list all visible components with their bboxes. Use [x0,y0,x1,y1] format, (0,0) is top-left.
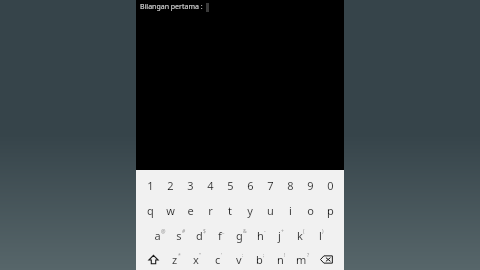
staticText: ' [221,252,223,259]
button[interactable]: t [220,198,240,223]
staticText: c [215,252,221,267]
staticText: s [176,228,182,243]
staticText: n [277,252,284,267]
staticText: 2 [167,178,174,193]
button[interactable]: f [211,223,231,248]
button[interactable]: 3 [180,173,200,198]
button[interactable]: m [292,248,313,270]
button[interactable]: c [208,248,229,270]
staticText: g [236,228,243,243]
staticText: - [264,228,266,235]
staticText: 5 [227,178,234,193]
button[interactable]: 5 [220,173,240,198]
staticText: 9 [307,178,314,193]
staticText: 7 [267,178,274,193]
button[interactable]: y [240,198,260,223]
button[interactable]: 9 [300,173,320,198]
button[interactable]: r [200,198,220,223]
staticText: 1 [147,178,154,193]
staticText: : [242,252,244,259]
staticText: y [247,203,253,218]
staticText: o [307,203,314,218]
button[interactable]: k [291,223,311,248]
staticText: _ [222,228,225,235]
button[interactable]: Shift [140,248,166,270]
button[interactable]: d [191,223,211,248]
staticText: v [236,252,242,267]
button[interactable]: w [160,198,180,223]
staticText: b [256,252,263,267]
staticText: d [196,228,203,243]
staticText: # [182,228,186,235]
staticText: & [243,228,247,235]
button[interactable]: a [149,223,170,248]
button[interactable]: 7 [260,173,280,198]
staticText: x [193,252,199,267]
staticText: h [257,228,264,243]
staticText: " [199,252,202,259]
button[interactable]: v [229,248,250,270]
staticText: + [281,228,284,235]
staticText: $ [203,228,206,235]
staticText: 4 [207,178,214,193]
staticText: u [267,203,274,218]
staticText: @ [161,228,166,235]
button[interactable]: s [170,223,191,248]
staticText: 0 [327,178,334,193]
staticText: t [228,203,232,218]
staticText: e [187,203,194,218]
button[interactable]: q [140,198,160,223]
button[interactable]: 0 [320,173,340,198]
staticText: ! [284,252,286,259]
button[interactable]: Backspace [313,248,340,270]
button[interactable]: 6 [240,173,260,198]
button[interactable]: l [311,223,331,248]
button[interactable]: e [180,198,200,223]
staticText: i [289,203,292,218]
button[interactable]: 1 [140,173,160,198]
button[interactable]: 8 [280,173,300,198]
staticText: j [278,228,281,243]
staticText: w [166,203,175,218]
staticText: k [297,228,303,243]
button[interactable]: u [260,198,280,223]
staticText: Bilangan pertama : [140,2,203,12]
staticText: 3 [187,178,194,193]
staticText: ) [322,228,324,235]
staticText: p [327,203,334,218]
staticText: ; [263,252,265,259]
staticText: q [147,203,154,218]
button[interactable]: i [280,198,300,223]
staticText: 8 [287,178,294,193]
staticText: 6 [247,178,254,193]
staticText: l [319,228,322,243]
button[interactable]: z [166,248,187,270]
button[interactable]: x [187,248,208,270]
button[interactable]: n [271,248,292,270]
button[interactable]: p [320,198,340,223]
button[interactable]: b [250,248,271,270]
button[interactable]: o [300,198,320,223]
staticText: ? [307,252,310,259]
button[interactable]: 2 [160,173,180,198]
button[interactable]: h [251,223,271,248]
staticText: a [154,228,161,243]
staticText: z [172,252,178,267]
staticText: r [208,203,213,218]
staticText: ( [303,228,305,235]
staticText: f [218,228,222,243]
button[interactable]: 4 [200,173,220,198]
staticText: * [178,252,181,259]
button[interactable]: g [231,223,251,248]
button[interactable]: j [271,223,291,248]
staticText: m [296,252,307,267]
